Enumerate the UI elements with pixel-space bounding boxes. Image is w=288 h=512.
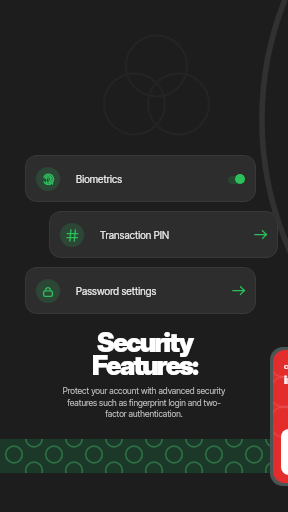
other: Open [255, 230, 267, 239]
button[interactable]: Virtual card [273, 350, 288, 483]
staticText: Protect your account with advanced secur… [60, 386, 228, 419]
staticText: Security Features: [92, 326, 197, 381]
button[interactable]: Biometrics [25, 155, 256, 202]
other: Open [233, 286, 245, 295]
staticText: Biometrics [76, 173, 123, 185]
button[interactable]: Transaction PIN [49, 211, 278, 258]
staticText: Transaction PIN [100, 229, 170, 241]
staticText: in [284, 373, 288, 386]
staticText: Password settings [76, 285, 157, 297]
button[interactable]: Toggle biometrics [228, 174, 245, 184]
staticText: CA [284, 363, 288, 370]
button[interactable]: Password settings [25, 267, 256, 314]
